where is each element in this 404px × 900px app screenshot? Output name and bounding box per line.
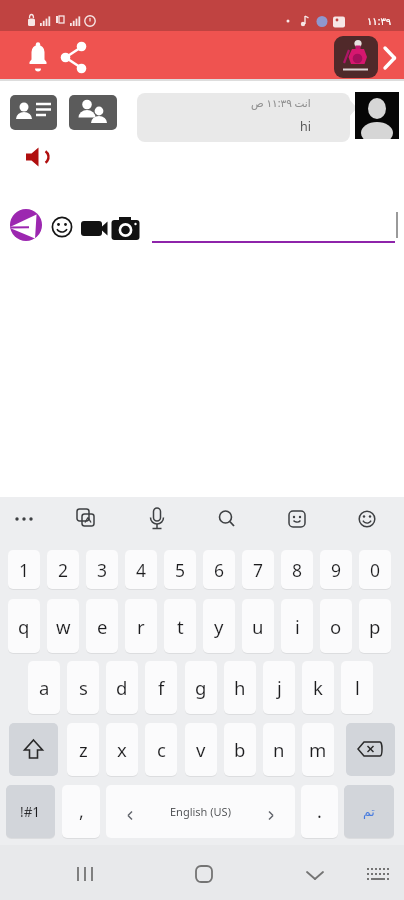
button[interactable]: f <box>145 661 177 714</box>
button[interactable]: r <box>125 599 157 653</box>
staticText: k <box>313 675 323 700</box>
staticText: e <box>97 614 108 639</box>
staticText: y <box>214 614 224 639</box>
staticText: 9 <box>331 558 342 582</box>
button[interactable]: j <box>263 661 295 714</box>
staticText: w <box>56 614 71 639</box>
button[interactable]: . <box>301 785 338 838</box>
button[interactable]: تم <box>344 785 394 838</box>
staticText: p <box>369 614 381 639</box>
button[interactable] <box>142 504 172 534</box>
button[interactable] <box>9 723 58 776</box>
staticText: o <box>330 614 342 639</box>
button[interactable]: y <box>203 599 235 653</box>
button[interactable]: b <box>224 723 256 776</box>
staticText: i <box>295 614 300 639</box>
button[interactable] <box>10 504 40 534</box>
button[interactable] <box>381 45 399 71</box>
button[interactable]: 9 <box>320 550 352 589</box>
staticText: v <box>196 737 206 762</box>
staticText: d <box>116 675 128 700</box>
button[interactable] <box>26 147 51 167</box>
button[interactable]: x <box>106 723 138 776</box>
staticText: تم <box>363 804 375 819</box>
button[interactable]: , <box>62 785 100 838</box>
button[interactable] <box>10 209 42 241</box>
button[interactable]: 7 <box>242 550 274 589</box>
button[interactable] <box>80 219 108 239</box>
button[interactable]: 3 <box>86 550 118 589</box>
button[interactable]: g <box>185 661 217 714</box>
button[interactable]: d <box>106 661 138 714</box>
button[interactable] <box>212 504 242 534</box>
button[interactable]: w <box>47 599 79 653</box>
button[interactable] <box>189 859 219 889</box>
button[interactable] <box>334 36 378 78</box>
button[interactable] <box>51 216 73 238</box>
button[interactable] <box>355 92 399 139</box>
button[interactable]: q <box>8 599 40 653</box>
staticText: q <box>18 614 30 639</box>
staticText: ١١:٣٩ <box>367 14 392 28</box>
button[interactable] <box>59 41 89 74</box>
button[interactable]: n <box>263 723 295 776</box>
button[interactable]: 4 <box>125 550 157 589</box>
staticText: g <box>195 675 207 700</box>
staticText: t <box>177 614 184 639</box>
button[interactable] <box>69 95 117 130</box>
button[interactable]: s <box>67 661 99 714</box>
button[interactable] <box>111 216 141 241</box>
button[interactable] <box>346 723 395 776</box>
button[interactable]: 2 <box>47 550 79 589</box>
button[interactable] <box>352 504 382 534</box>
button[interactable]: h <box>224 661 256 714</box>
staticText: l <box>355 675 360 700</box>
button[interactable] <box>25 41 51 75</box>
staticText: !#1 <box>20 803 41 821</box>
staticText: a <box>39 675 50 700</box>
button[interactable]: !#1 <box>6 785 55 838</box>
staticText: z <box>79 737 88 762</box>
staticText: 0 <box>370 558 381 582</box>
staticText: . <box>317 799 322 824</box>
button[interactable] <box>282 504 312 534</box>
button[interactable]: 5 <box>164 550 196 589</box>
button[interactable]: 1 <box>8 550 40 589</box>
staticText: b <box>234 737 246 762</box>
button[interactable]: u <box>242 599 274 653</box>
staticText: 2 <box>58 558 69 582</box>
staticText: r <box>137 614 145 639</box>
staticText: c <box>157 737 166 762</box>
staticText: انت ١١:٣٩ ص <box>251 96 311 110</box>
staticText: x <box>117 737 127 762</box>
staticText: h <box>234 675 246 700</box>
staticText: 4 <box>136 558 147 582</box>
button[interactable]: a <box>28 661 60 714</box>
staticText: n <box>273 737 285 762</box>
button[interactable]: c <box>145 723 177 776</box>
button[interactable]: 8 <box>281 550 313 589</box>
button[interactable] <box>72 504 102 534</box>
staticText: s <box>79 675 88 700</box>
button[interactable]: z <box>67 723 99 776</box>
button[interactable]: m <box>302 723 334 776</box>
button[interactable] <box>300 862 330 886</box>
button[interactable] <box>70 860 100 890</box>
button[interactable]: 0 <box>359 550 391 589</box>
button[interactable]: i <box>281 599 313 653</box>
staticText: 1 <box>19 558 30 582</box>
button[interactable]: e <box>86 599 118 653</box>
staticText: j <box>277 675 282 700</box>
button[interactable]: k <box>302 661 334 714</box>
button[interactable]: 6 <box>203 550 235 589</box>
button[interactable]: v <box>185 723 217 776</box>
button[interactable] <box>363 864 393 888</box>
button[interactable]: p <box>359 599 391 653</box>
staticText: m <box>309 737 327 762</box>
staticText: 7 <box>253 558 264 582</box>
button[interactable]: l <box>341 661 373 714</box>
button[interactable]: o <box>320 599 352 653</box>
button[interactable]: t <box>164 599 196 653</box>
button[interactable] <box>10 95 57 130</box>
button[interactable]: English (US) <box>106 785 295 838</box>
